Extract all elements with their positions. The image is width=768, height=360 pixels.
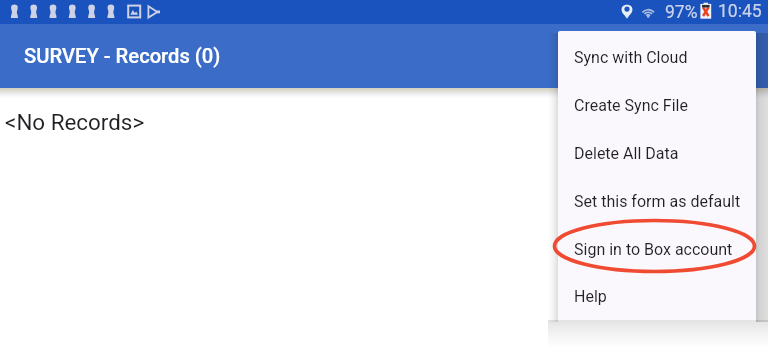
button[interactable]: Sign in to Box account: [558, 225, 756, 273]
button[interactable]: Set this form as default: [558, 177, 756, 225]
button[interactable]: Create Sync File: [558, 81, 756, 129]
staticText: <No Records>: [5, 109, 145, 135]
staticText: Help: [574, 287, 607, 306]
staticText: Sign in to Box account: [574, 240, 733, 259]
staticText: Create Sync File: [574, 96, 688, 115]
staticText: 10:45: [718, 1, 762, 22]
button[interactable]: Delete All Data: [558, 129, 756, 177]
staticText: 97%: [665, 2, 698, 23]
staticText: Delete All Data: [574, 144, 679, 163]
staticText: Set this form as default: [574, 192, 741, 211]
button[interactable]: Sync with Cloud: [558, 33, 756, 81]
staticText: Sync with Cloud: [574, 48, 688, 67]
staticText: SURVEY - Records (0): [24, 44, 221, 68]
button[interactable]: Help: [558, 273, 756, 320]
